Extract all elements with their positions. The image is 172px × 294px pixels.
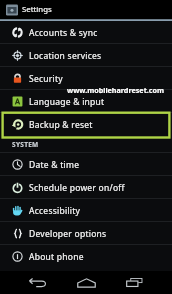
staticText: Developer options: [29, 228, 107, 240]
button[interactable]: Date & time: [0, 153, 172, 176]
staticText: SYSTEM: [12, 140, 39, 149]
staticText: About phone: [29, 251, 84, 263]
button[interactable]: Home: [71, 271, 102, 294]
button[interactable]: Accessibility: [0, 199, 172, 222]
staticText: Accessibility: [29, 205, 81, 217]
button[interactable]: Security: [0, 67, 172, 90]
staticText: Date & time: [29, 159, 80, 171]
staticText: Settings: [22, 4, 52, 15]
button[interactable]: Location services: [0, 44, 172, 67]
button[interactable]: Developer options: [0, 222, 172, 245]
staticText: Location services: [29, 50, 102, 62]
staticText: Security: [29, 73, 63, 85]
staticText: Backup & reset: [29, 119, 93, 131]
staticText: Language & input: [29, 96, 105, 108]
staticText: Accounts & sync: [29, 27, 98, 39]
button[interactable]: Accounts & sync: [0, 21, 172, 44]
button[interactable]: Language & input: [0, 90, 172, 113]
staticText: Schedule power on/off: [29, 182, 125, 194]
button[interactable]: Settings: [0, 0, 172, 19]
button[interactable]: Back: [23, 271, 53, 294]
button[interactable]: About phone: [0, 245, 172, 268]
button[interactable]: Recents: [120, 271, 149, 294]
button[interactable]: Schedule power on/off: [0, 176, 172, 199]
button[interactable]: Backup & reset: [0, 113, 172, 136]
staticText: www.mobilehardreset.com: [67, 85, 165, 95]
